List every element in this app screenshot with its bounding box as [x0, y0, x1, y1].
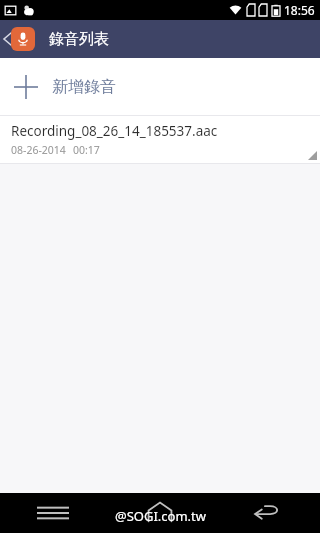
staticText: 新增錄音: [52, 77, 116, 97]
staticText: 00:17: [73, 143, 100, 157]
button[interactable]: Recording_08_26_14_185537.aac: [0, 116, 320, 163]
staticText: Recording_08_26_14_185537.aac: [11, 122, 218, 140]
button[interactable]: Home: [106, 493, 213, 533]
staticText: 錄音列表: [49, 30, 109, 49]
button[interactable]: Back: [213, 493, 320, 533]
button[interactable]: 新增錄音: [0, 58, 320, 115]
staticText: 18:56: [284, 2, 315, 18]
button[interactable]: Back: [2, 20, 34, 58]
staticText: 08-26-2014: [11, 143, 66, 157]
staticText: @SOGI.com.tw: [115, 507, 206, 525]
button[interactable]: Menu: [0, 493, 106, 533]
